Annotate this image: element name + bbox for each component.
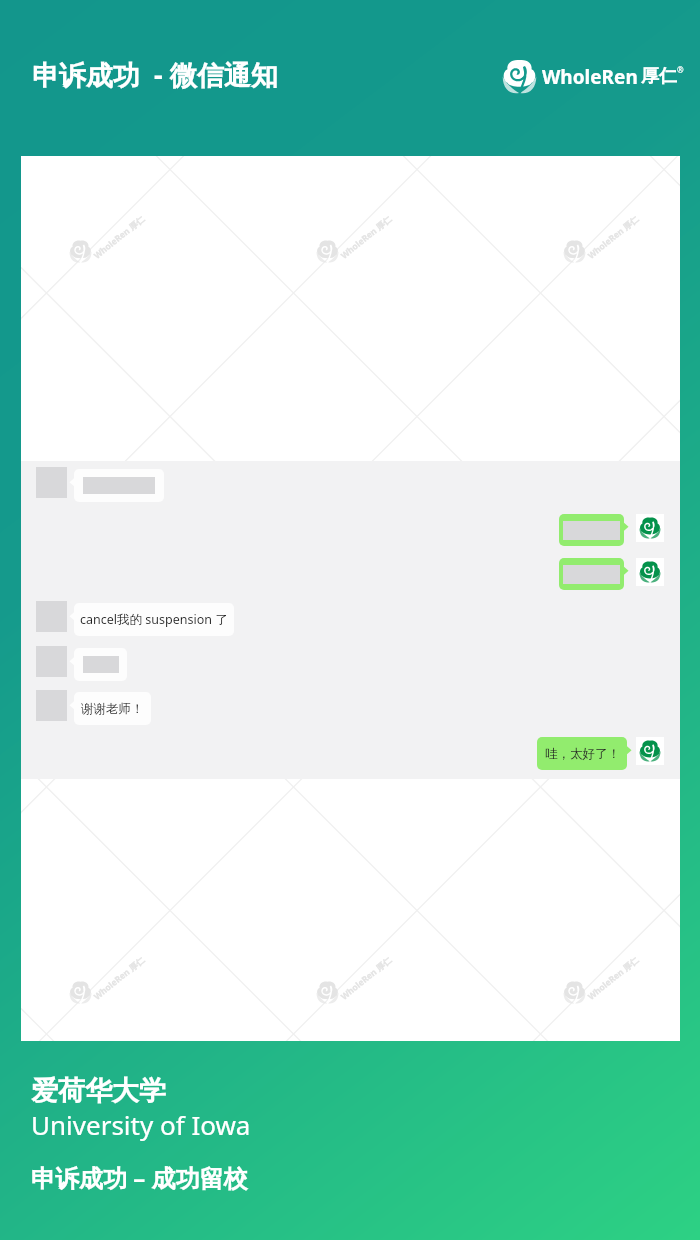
button[interactable]: Message from classmate (36, 646, 127, 679)
staticText: WholeRen (542, 64, 638, 90)
button[interactable]: Message from classmate (36, 467, 164, 500)
staticText: WholeRen 厚仁 (91, 459, 148, 508)
staticText: 申诉成功 – 成功留校 (31, 1161, 248, 1194)
button[interactable]: University of Iowa (31, 1107, 251, 1142)
button[interactable]: cancel我的 suspension 了 (36, 601, 234, 634)
staticText: ® (677, 64, 684, 75)
button[interactable]: Message from WholeRen advisor (559, 558, 664, 590)
staticText: 厚仁 (641, 65, 677, 88)
staticText: WholeRen 厚仁 (91, 706, 148, 755)
button[interactable]: 哇，太好了！ (537, 737, 664, 770)
button[interactable]: 谢谢老师！ (36, 690, 151, 723)
staticText: WholeRen 厚仁 (91, 953, 148, 1002)
button[interactable]: WholeRen logo (502, 59, 684, 94)
staticText: cancel我的 suspension 了 (80, 611, 228, 628)
staticText: University of Iowa (31, 1107, 251, 1142)
staticText: 爱荷华大学 (31, 1074, 166, 1108)
staticText: WholeRen 厚仁 (91, 212, 148, 261)
button[interactable]: 爱荷华大学 (31, 1074, 166, 1108)
staticText: WholeRen 厚仁 (585, 212, 642, 261)
button[interactable]: WeChat conversation screenshot (21, 156, 680, 1041)
staticText: 哇，太好了！ (545, 746, 620, 762)
staticText: WholeRen 厚仁 (338, 953, 395, 1002)
staticText: WholeRen 厚仁 (338, 212, 395, 261)
staticText: WholeRen 厚仁 (585, 953, 642, 1002)
button[interactable]: 申诉成功 – 成功留校 (31, 1161, 248, 1194)
staticText: 谢谢老师！ (81, 701, 144, 717)
staticText: WholeRen 厚仁 (585, 706, 642, 755)
staticText: 申诉成功 - 微信通知 (32, 56, 278, 93)
button[interactable]: 申诉成功 - 微信通知 (32, 56, 278, 93)
button[interactable]: Message from WholeRen advisor (559, 514, 664, 546)
